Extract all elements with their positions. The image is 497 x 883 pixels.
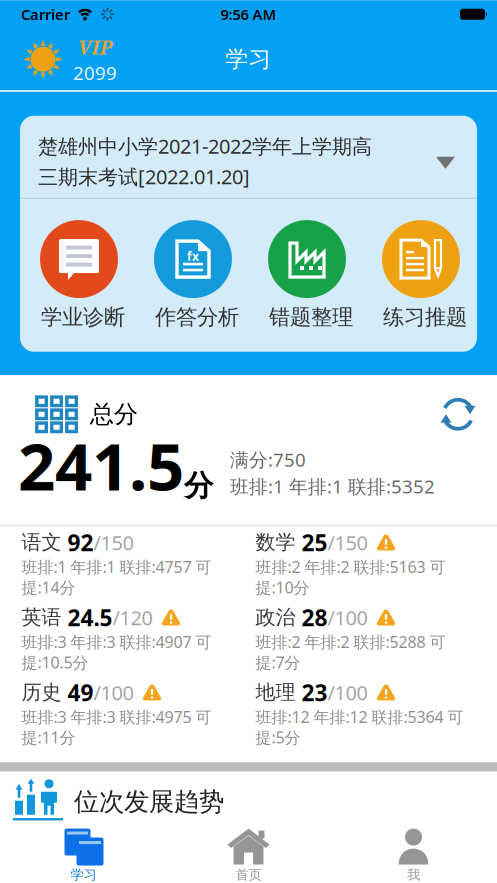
staticText: 学习 xyxy=(70,867,96,883)
staticText: /100 xyxy=(327,604,367,631)
staticText: 英语 xyxy=(21,605,61,630)
staticText: 92 xyxy=(61,527,93,557)
staticText: 首页 xyxy=(235,867,261,883)
staticText: 作答分析 xyxy=(155,304,239,330)
staticText: /120 xyxy=(112,604,152,631)
button[interactable]: 位次发展趋势 xyxy=(0,772,497,828)
staticText: 班排:3 年排:3 联排:4975 可 xyxy=(21,706,211,727)
staticText: 提:7分 xyxy=(255,652,300,673)
staticText: 28 xyxy=(295,602,327,632)
staticText: /150 xyxy=(93,529,133,556)
staticText: 历史 xyxy=(21,680,61,705)
staticText: 学业诊断 xyxy=(41,304,125,330)
staticText: 班排:1 年排:1 联排:5352 xyxy=(230,474,435,499)
staticText: 数学 xyxy=(255,530,295,555)
button[interactable]: 练习推题 xyxy=(379,220,463,330)
button[interactable]: 学业诊断 xyxy=(37,220,121,330)
staticText: 班排:1 年排:1 联排:4757 可 xyxy=(21,556,211,577)
staticText: /100 xyxy=(93,679,133,706)
button[interactable]: 楚雄州中小学2021-2022学年上学期高 xyxy=(20,116,477,190)
staticText: 学习 xyxy=(225,45,271,73)
button[interactable]: 刷新 xyxy=(439,395,477,433)
staticText: 错题整理 xyxy=(269,304,353,330)
staticText: 语文 xyxy=(21,530,61,555)
staticText: 2099 xyxy=(73,60,117,85)
staticText: 楚雄州中小学2021-2022学年上学期高 xyxy=(38,133,372,159)
staticText: 练习推题 xyxy=(383,304,467,330)
staticText: Carrier xyxy=(21,4,70,24)
staticText: 我 xyxy=(407,867,420,883)
staticText: /100 xyxy=(327,679,367,706)
staticText: 地理 xyxy=(255,680,295,705)
button[interactable]: 学习 xyxy=(1,828,166,883)
staticText: 班排:2 年排:2 联排:5288 可 xyxy=(255,631,445,652)
staticText: 班排:2 年排:2 联排:5163 可 xyxy=(255,556,445,577)
button[interactable]: 错题整理 xyxy=(265,220,349,330)
staticText: 提:11分 xyxy=(21,727,75,748)
staticText: 提:10.5分 xyxy=(21,652,88,673)
staticText: 24.5 xyxy=(61,602,112,632)
button[interactable]: 首页 xyxy=(166,828,331,883)
staticText: /150 xyxy=(327,529,367,556)
staticText: 分 xyxy=(184,468,213,504)
staticText: 25 xyxy=(295,527,327,557)
button[interactable]: 我 xyxy=(331,828,496,883)
staticText: 提:10分 xyxy=(255,577,309,598)
staticText: 班排:12 年排:12 联排:5364 可 xyxy=(255,706,463,727)
staticText: VIP xyxy=(77,33,112,60)
staticText: 位次发展趋势 xyxy=(74,786,224,817)
button[interactable]: fx xyxy=(151,220,235,330)
staticText: 总分 xyxy=(90,399,138,429)
staticText: 241.5 xyxy=(18,422,184,509)
staticText: 满分:750 xyxy=(230,447,306,472)
staticText: fx xyxy=(187,248,199,264)
staticText: 提:14分 xyxy=(21,577,75,598)
staticText: 49 xyxy=(61,677,93,707)
staticText: 9:56 AM xyxy=(220,4,276,24)
staticText: 三期末考试[2022.01.20] xyxy=(38,163,250,190)
staticText: 提:5分 xyxy=(255,727,300,748)
staticText: 23 xyxy=(295,677,327,707)
staticText: 班排:3 年排:3 联排:4907 可 xyxy=(21,631,211,652)
staticText: 政治 xyxy=(255,605,295,630)
